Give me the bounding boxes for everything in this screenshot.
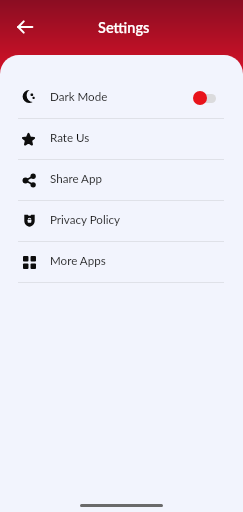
button[interactable]: Share App	[0, 160, 243, 200]
button[interactable]: Privacy Policy	[0, 201, 243, 241]
staticText: Dark Mode	[50, 90, 108, 104]
staticText: Rate Us	[50, 131, 90, 145]
button[interactable]: Dark mode toggle	[193, 91, 216, 105]
button[interactable]: Rate Us	[0, 119, 243, 159]
staticText: Settings	[98, 19, 150, 36]
button[interactable]: More Apps	[0, 242, 243, 282]
staticText: Privacy Policy	[50, 213, 120, 227]
button[interactable]: Dark Mode	[0, 78, 243, 118]
staticText: More Apps	[50, 254, 106, 268]
button[interactable]: Back	[9, 11, 41, 43]
staticText: Share App	[50, 172, 102, 186]
